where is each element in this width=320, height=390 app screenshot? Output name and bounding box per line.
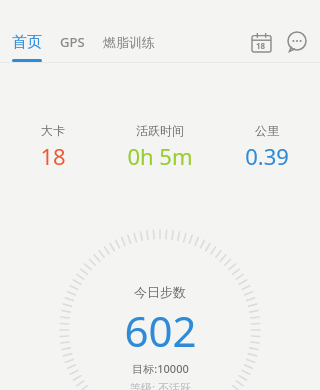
staticText: 目标:10000 [132,361,189,376]
button[interactable]: Step progress dial [60,230,260,390]
staticText: 0h 5m [127,141,193,171]
staticText: 燃脂训练 [103,34,155,50]
button[interactable]: Calendar [246,27,276,57]
button[interactable]: 首页 [12,31,42,54]
staticText: 大卡 [41,123,65,138]
button[interactable]: Messages [282,27,312,57]
staticText: GPS [60,33,85,51]
staticText: 0.39 [245,141,289,171]
button[interactable]: GPS [60,31,85,53]
staticText: 18 [256,40,266,51]
button[interactable]: 活跃时间 [106,121,213,173]
button[interactable]: 公里 [213,121,320,173]
staticText: 602 [124,302,197,359]
button[interactable]: 燃脂训练 [103,32,155,52]
staticText: 今日步数 [134,284,186,300]
staticText: 首页 [12,33,42,52]
staticText: 等级: 不活跃 [130,380,191,390]
button[interactable]: 大卡 [0,121,106,173]
staticText: 活跃时间 [136,123,184,138]
staticText: 18 [40,141,66,171]
staticText: 公里 [255,123,279,138]
